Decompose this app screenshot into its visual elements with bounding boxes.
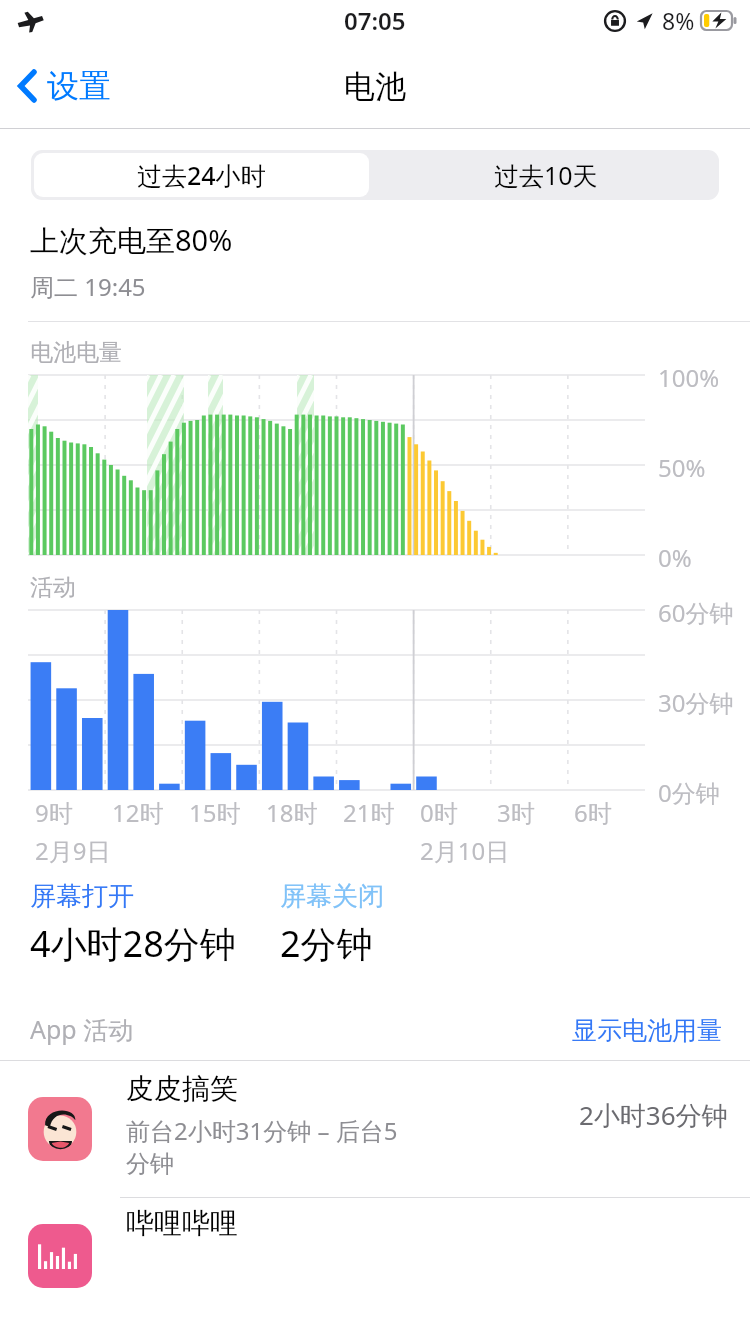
staticText: 21时 (343, 796, 395, 829)
staticText: 3时 (497, 796, 535, 829)
button[interactable]: 皮皮搞笑 (0, 1061, 750, 1197)
staticText: 过去10天 (494, 158, 598, 192)
staticText: 哔哩哔哩 (126, 1206, 238, 1241)
staticText: 9时 (35, 796, 73, 829)
staticText: 过去24小时 (137, 158, 266, 192)
staticText: 设置 (47, 66, 111, 106)
staticText: 15时 (189, 796, 241, 829)
staticText: 0时 (420, 796, 458, 829)
staticText: 2月9日 (35, 834, 111, 867)
staticText: 30分钟 (658, 686, 734, 719)
staticText: 2分钟 (280, 919, 373, 968)
staticText: 50% (658, 451, 706, 484)
button[interactable]: 哔哩哔哩 (0, 1198, 750, 1308)
staticText: 07:05 (344, 4, 406, 37)
staticText: 2小时36分钟 (579, 1097, 728, 1133)
staticText: 8% (662, 5, 695, 36)
button[interactable]: 过去10天 (372, 150, 719, 200)
staticText: 60分钟 (658, 596, 734, 629)
staticText: 0% (658, 541, 692, 574)
staticText: 屏幕关闭 (280, 880, 384, 913)
staticText: 电池 (344, 67, 406, 106)
staticText: 上次充电至80% (30, 220, 233, 260)
staticText: App 活动 (30, 1012, 134, 1046)
staticText: 活动 (30, 573, 76, 602)
staticText: 12时 (112, 796, 164, 829)
staticText: 电池电量 (30, 338, 122, 367)
other: Airplane mode (16, 9, 44, 35)
staticText: 显示电池用量 (572, 1015, 722, 1046)
staticText: 屏幕打开 (30, 880, 134, 913)
staticText: 4小时28分钟 (30, 919, 236, 968)
staticText: 2月10日 (420, 834, 510, 867)
staticText: 周二 19:45 (30, 270, 146, 303)
staticText: 6时 (574, 796, 612, 829)
button[interactable]: 显示电池用量 (572, 1015, 722, 1046)
staticText: 分钟 (126, 1149, 174, 1179)
staticText: 皮皮搞笑 (126, 1071, 238, 1106)
staticText: 18时 (266, 796, 318, 829)
button[interactable]: 过去24小时 (34, 153, 369, 197)
staticText: 前台2小时31分钟 – 后台5 (126, 1114, 398, 1147)
staticText: 0分钟 (658, 776, 720, 809)
button[interactable]: 设置 (10, 56, 119, 116)
staticText: 100% (658, 361, 720, 394)
